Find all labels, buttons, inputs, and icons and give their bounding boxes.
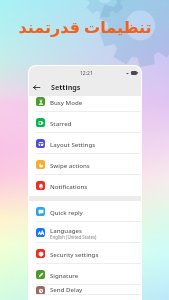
- staticText: تنظیمات قدرتمند: [18, 16, 152, 38]
- button[interactable]: Notifications: [29, 175, 141, 196]
- button[interactable]: Starred: [29, 112, 141, 133]
- button[interactable]: Swipe actions: [29, 154, 141, 175]
- staticText: English (United States): [50, 234, 97, 240]
- staticText: Starred: [50, 119, 72, 127]
- staticText: Languages: [50, 226, 82, 234]
- staticText: Notifications: [50, 182, 88, 190]
- staticText: No Delay: [50, 293, 69, 295]
- staticText: Settings: [51, 82, 81, 92]
- button[interactable]: Busy Mode: [29, 96, 141, 112]
- staticText: Layout Settings: [50, 140, 96, 148]
- button[interactable]: Send Delay: [29, 285, 141, 295]
- button[interactable]: Quick reply: [29, 201, 141, 222]
- button[interactable]: Back: [31, 82, 42, 93]
- staticText: Signature: [50, 271, 79, 279]
- button[interactable]: Signature: [29, 264, 141, 285]
- staticText: 12:21: [80, 70, 93, 77]
- staticText: Swipe actions: [50, 161, 90, 169]
- button[interactable]: Languages: [29, 222, 141, 243]
- staticText: Security settings: [50, 250, 99, 258]
- button[interactable]: Security settings: [29, 243, 141, 264]
- staticText: Busy Mode: [50, 98, 83, 106]
- staticText: Send Delay: [50, 285, 83, 293]
- button[interactable]: Layout Settings: [29, 133, 141, 154]
- staticText: Quick reply: [50, 208, 83, 216]
